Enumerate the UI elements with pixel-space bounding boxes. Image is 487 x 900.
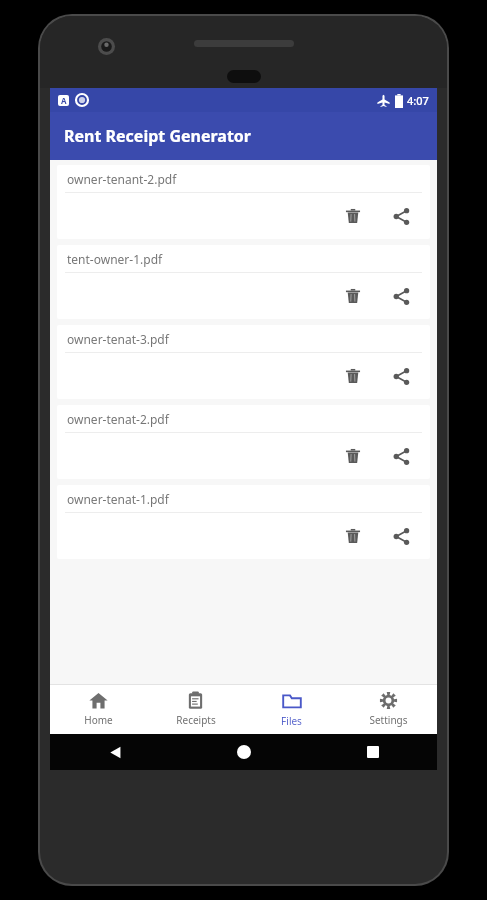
button[interactable]: Back — [97, 734, 133, 770]
staticText: owner-tenant-2.pdf — [67, 171, 177, 187]
staticText: Files — [281, 714, 302, 728]
button[interactable]: Settings — [341, 684, 436, 734]
staticText: 4:07 — [407, 93, 429, 108]
button[interactable]: tent-owner-1.pdf — [57, 245, 430, 319]
button[interactable]: Home — [226, 734, 262, 770]
staticText: Home — [84, 713, 113, 727]
button[interactable]: owner-tenant-2.pdf — [57, 165, 430, 239]
button[interactable]: Recent apps — [355, 734, 391, 770]
staticText: tent-owner-1.pdf — [67, 251, 163, 267]
button[interactable]: Delete — [336, 359, 370, 393]
button[interactable]: Share — [384, 359, 418, 393]
button[interactable]: Share — [384, 279, 418, 313]
button[interactable]: Receipts — [148, 684, 243, 734]
staticText: Receipts — [176, 713, 216, 727]
staticText: A — [61, 95, 67, 106]
staticText: Settings — [369, 713, 408, 727]
staticText: Rent Receipt Generator — [64, 125, 252, 147]
button[interactable]: Files — [244, 684, 339, 734]
button[interactable]: Delete — [336, 199, 370, 233]
button[interactable]: owner-tenat-1.pdf — [57, 485, 430, 559]
staticText: owner-tenat-1.pdf — [67, 491, 169, 507]
button[interactable]: Share — [384, 199, 418, 233]
button[interactable]: Share — [384, 439, 418, 473]
button[interactable]: Home — [51, 684, 146, 734]
button[interactable]: Share — [384, 519, 418, 553]
button[interactable]: Delete — [336, 439, 370, 473]
staticText: owner-tenat-3.pdf — [67, 331, 169, 347]
button[interactable]: Delete — [336, 279, 370, 313]
staticText: owner-tenat-2.pdf — [67, 411, 169, 427]
button[interactable]: Delete — [336, 519, 370, 553]
button[interactable]: owner-tenat-3.pdf — [57, 325, 430, 399]
button[interactable]: owner-tenat-2.pdf — [57, 405, 430, 479]
